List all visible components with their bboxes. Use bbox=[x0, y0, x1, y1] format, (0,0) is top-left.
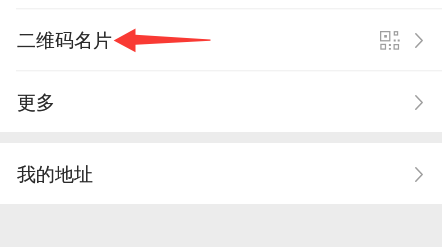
staticText: 更多 bbox=[17, 91, 55, 115]
staticText: 二维码名片 bbox=[17, 29, 112, 53]
button[interactable]: 更多 bbox=[0, 70, 442, 132]
staticText: 更多 bbox=[17, 91, 55, 115]
staticText: 我的地址 bbox=[17, 163, 93, 187]
button[interactable]: 我的地址 bbox=[0, 143, 442, 204]
button[interactable]: Show QR code business card bbox=[380, 31, 400, 50]
staticText: 我的地址 bbox=[17, 163, 93, 187]
button[interactable]: 二维码名片 bbox=[0, 8, 442, 70]
staticText: 二维码名片 bbox=[17, 29, 112, 53]
